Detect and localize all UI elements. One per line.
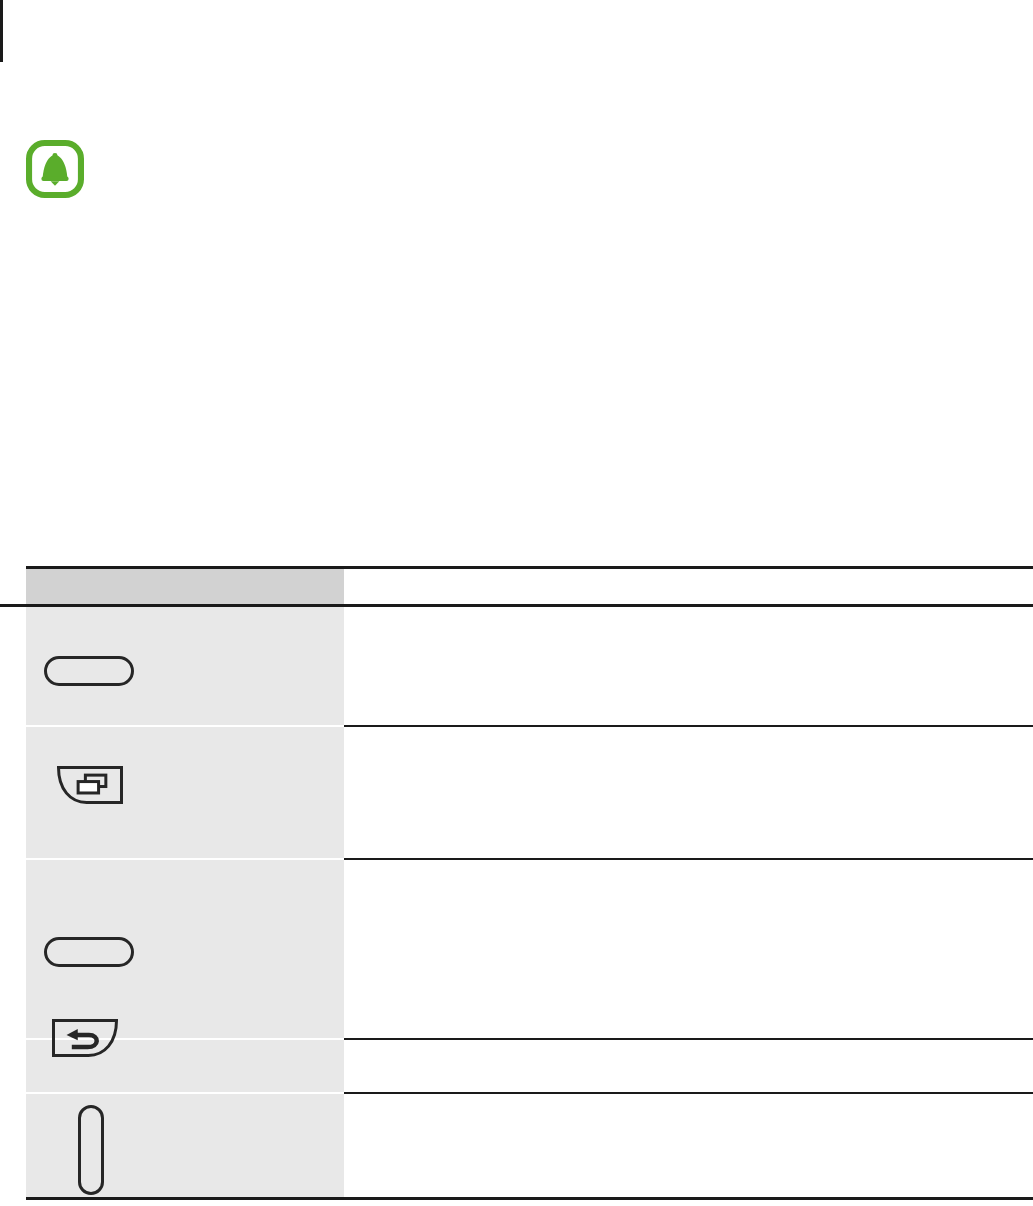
- button[interactable]: Recents key: [57, 766, 123, 804]
- button[interactable]: Home key long press: [44, 937, 134, 967]
- button[interactable]: Back key: [52, 1019, 118, 1057]
- button[interactable]: Note: [26, 140, 84, 198]
- button[interactable]: Home key: [44, 656, 134, 686]
- button[interactable]: Power key: [78, 1105, 104, 1195]
